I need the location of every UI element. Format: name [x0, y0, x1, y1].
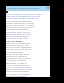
button[interactable]: article with many sources: [6, 31, 30, 34]
button[interactable]: in the early century and: [6, 44, 29, 47]
button[interactable]: 1919 - A treaty was signed: [6, 66, 31, 69]
staticText: WIKIPEDIA The Free Encyclopedia: [7, 7, 40, 10]
button[interactable]: Arts Biography Geography: [6, 20, 32, 23]
button[interactable]: Wikipedia languages: [6, 75, 26, 78]
button[interactable]: Archive By email More: [6, 37, 28, 40]
button[interactable]: On this day in history: [6, 59, 26, 62]
button[interactable]: Events around the world: [6, 53, 29, 56]
button[interactable]: that anyone can edit. 6,400,000 art: [6, 17, 39, 20]
button[interactable]: has since been widespread: [6, 46, 32, 49]
button[interactable]: reported by many sources: [6, 57, 31, 60]
button[interactable]: In the news today: [6, 51, 23, 54]
button[interactable]: continue to develop as: [6, 55, 28, 58]
button[interactable]: Read more about this topic: [6, 33, 32, 36]
button[interactable]: Society Technology All portals: [6, 24, 35, 27]
button[interactable]: that the first recorded use: [6, 42, 31, 45]
button[interactable]: Did you know ...: [6, 39, 25, 42]
button[interactable]: The topic is discussed in: [6, 28, 29, 31]
button[interactable]: WIKIPEDIA The Free Encyclopedia: [6, 6, 50, 11]
button[interactable]: Recently featured items: [6, 35, 29, 38]
button[interactable]: History Mathematics Science: [6, 22, 35, 25]
button[interactable]: From Wikipedia, the free encyclopedia: [6, 13, 42, 16]
button[interactable]: September 10: Events: [6, 62, 27, 65]
button[interactable]: 1846 - The invention was: [6, 64, 30, 67]
button[interactable]: Today's featured picture: [6, 70, 29, 73]
button[interactable]: Archive Start a new article: [6, 48, 31, 51]
button[interactable]: Welcome to Wikipedia, the free ency: [6, 15, 41, 18]
button[interactable]: More anniversaries: Archive: [6, 68, 33, 71]
button[interactable]: From today's featured article: [6, 26, 34, 29]
button[interactable]: Other areas of Wikipedia: [6, 73, 30, 76]
